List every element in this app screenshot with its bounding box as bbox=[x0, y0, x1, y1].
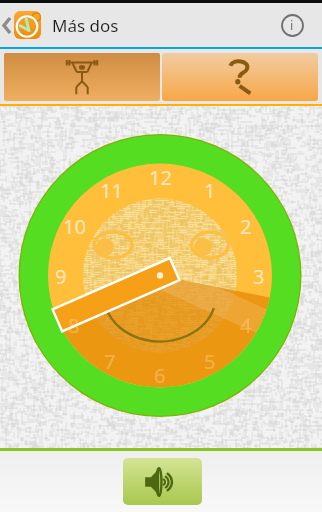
staticText: 4 bbox=[240, 312, 252, 338]
staticText: 1 bbox=[204, 177, 216, 203]
staticText: i bbox=[290, 16, 294, 34]
staticText: 3 bbox=[253, 263, 265, 289]
button[interactable]: Help bbox=[162, 53, 318, 101]
button[interactable]: Exercise bbox=[4, 53, 160, 101]
staticText: 12 bbox=[149, 164, 172, 190]
staticText: 9 bbox=[55, 263, 67, 289]
staticText: 6 bbox=[154, 362, 166, 388]
staticText: 11 bbox=[100, 177, 123, 203]
button[interactable]: Back bbox=[0, 3, 119, 47]
staticText: 8 bbox=[68, 312, 80, 338]
button[interactable]: Play sound bbox=[123, 458, 202, 505]
staticText: 10 bbox=[63, 213, 86, 239]
staticText: Más dos bbox=[52, 14, 119, 37]
staticText: 2 bbox=[240, 213, 252, 239]
staticText: 7 bbox=[104, 348, 116, 374]
staticText: 5 bbox=[204, 348, 216, 374]
button[interactable]: Info bbox=[270, 3, 314, 47]
